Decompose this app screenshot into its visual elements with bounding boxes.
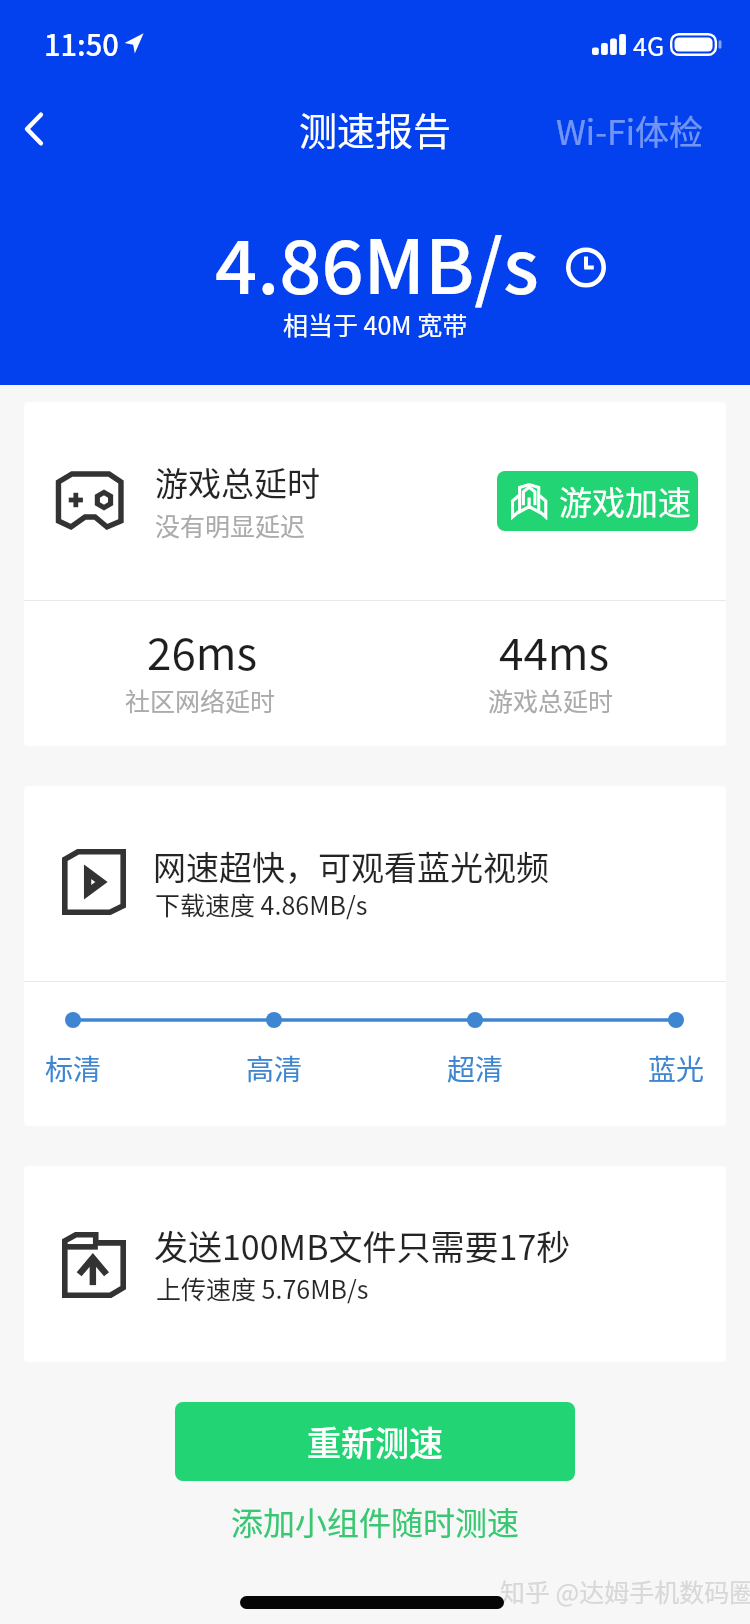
button[interactable] [375, 601, 726, 746]
staticText: 上传速度 5.76MB/s [156, 1270, 369, 1306]
staticText: 重新测速 [307, 1417, 443, 1466]
staticText: 相当于 40M 宽带 [283, 306, 468, 342]
staticText: 标清 [45, 1048, 102, 1089]
staticText: 添加小组件随时测速 [231, 1498, 520, 1544]
staticText: 社区网络延时 [125, 682, 276, 718]
staticText: 超清 [447, 1048, 504, 1089]
staticText: Wi-Fi体检 [556, 106, 704, 155]
button[interactable]: Back [0, 93, 71, 165]
staticText: 测速报告 [299, 101, 452, 156]
staticText: 44ms [499, 619, 610, 683]
staticText: 高清 [246, 1048, 303, 1089]
button[interactable]: 高清 [229, 1046, 319, 1090]
button[interactable]: 重新测速 [175, 1402, 575, 1481]
staticText: 4.86MB/s [215, 208, 539, 315]
button[interactable]: 蓝光 [631, 1046, 721, 1090]
staticText: 知乎 @达姆手机数码圈 [500, 1573, 750, 1609]
button[interactable]: 超清 [430, 1046, 520, 1090]
staticText: 蓝光 [648, 1048, 705, 1089]
staticText: 游戏加速 [559, 477, 691, 525]
button[interactable]: 标清 [28, 1046, 118, 1090]
button[interactable]: Wi-Fi体检 [540, 95, 720, 165]
staticText: 4G [633, 27, 665, 63]
button[interactable] [24, 601, 375, 746]
staticText: 26ms [147, 619, 258, 683]
button[interactable]: 添加小组件随时测速 [215, 1490, 535, 1552]
staticText: 游戏总延时 [155, 458, 320, 506]
staticText: 发送100MB文件只需要17秒 [154, 1221, 571, 1270]
staticText: 游戏总延时 [488, 682, 614, 718]
staticText: 没有明显延迟 [155, 507, 306, 543]
staticText: 下载速度 4.86MB/s [155, 886, 368, 922]
button[interactable]: 游戏加速 [497, 471, 698, 531]
staticText: 11:50 [44, 22, 119, 64]
staticText: 网速超快，可观看蓝光视频 [153, 842, 549, 890]
